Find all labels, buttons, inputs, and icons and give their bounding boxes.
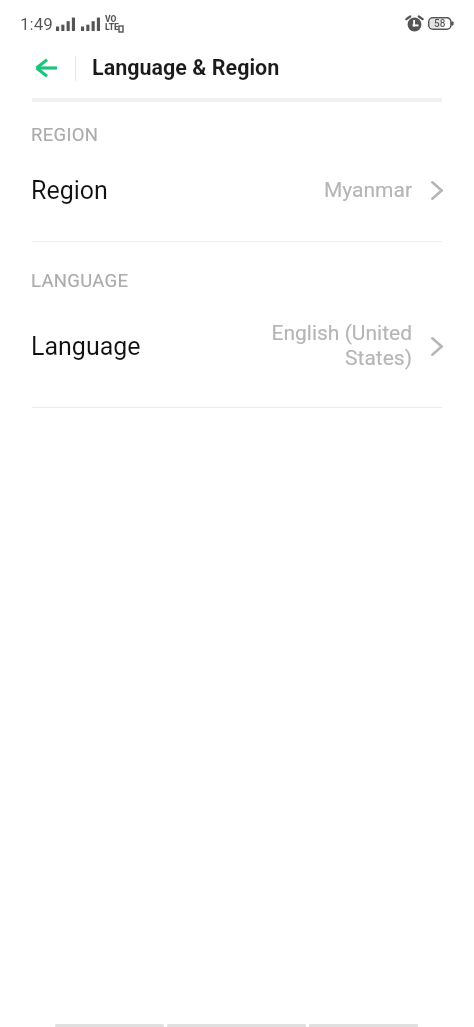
staticText: Language & Region: [92, 55, 280, 80]
staticText: Language: [31, 332, 141, 361]
button[interactable]: Region: [0, 164, 474, 216]
staticText: 1:49: [20, 14, 53, 34]
staticText: English (United: [271, 321, 412, 346]
staticText: LTE: [105, 22, 119, 32]
staticText: LANGUAGE: [31, 270, 129, 292]
staticText: Myanmar: [323, 178, 412, 203]
staticText: REGION: [31, 124, 99, 146]
staticText: VO: [105, 14, 117, 24]
staticText: Region: [31, 176, 108, 205]
staticText: States): [345, 346, 412, 371]
button[interactable]: Language: [0, 320, 474, 372]
staticText: 58: [434, 18, 446, 30]
button[interactable]: Back: [23, 45, 68, 90]
